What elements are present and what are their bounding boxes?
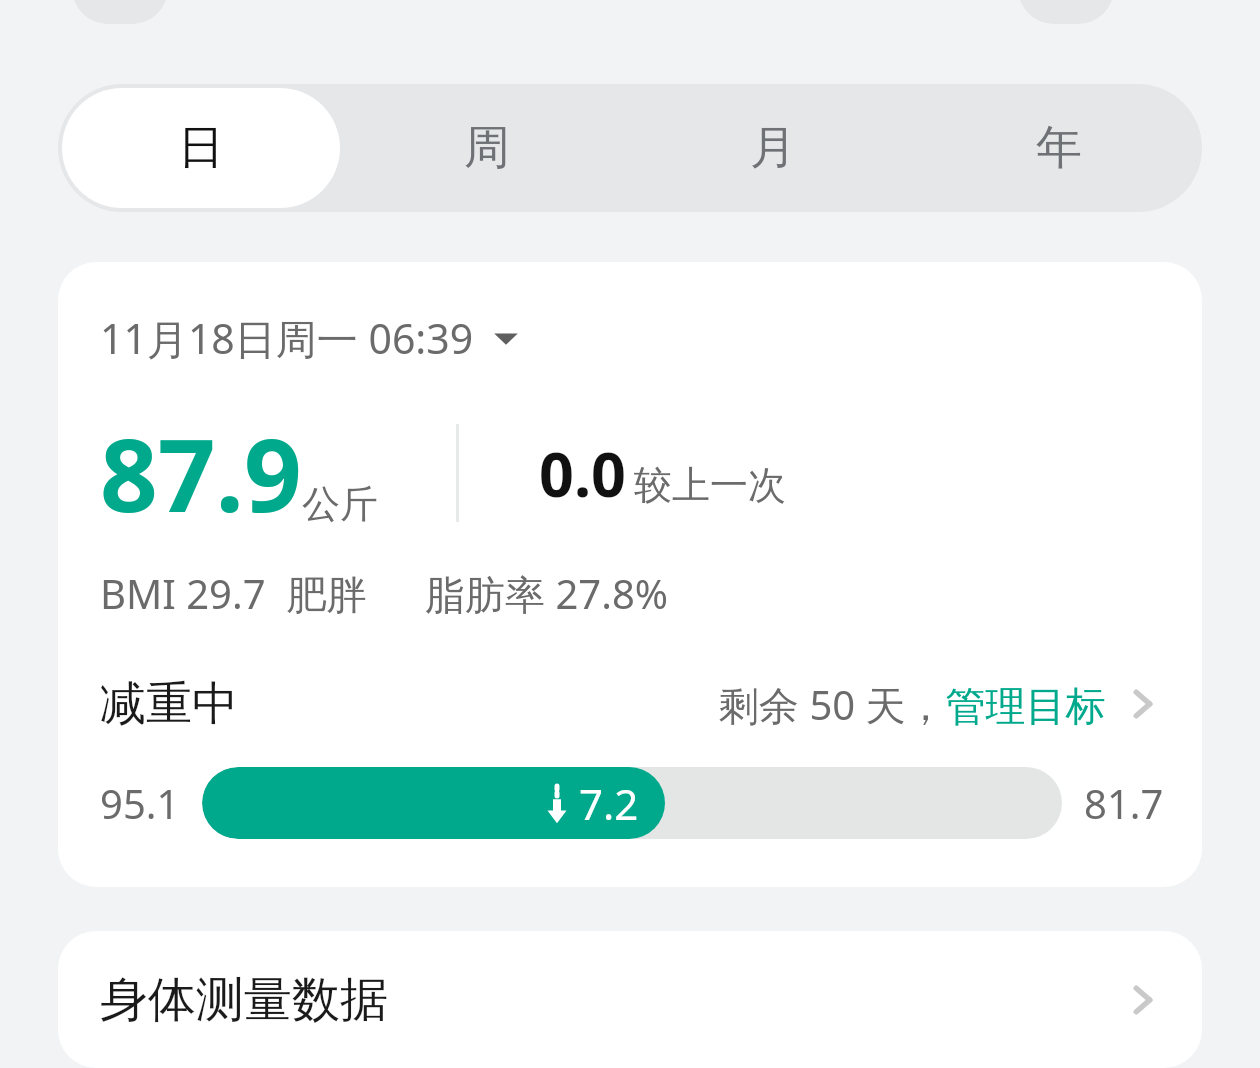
staticText: 0.0	[539, 432, 626, 515]
button[interactable]: 减重中	[58, 675, 1202, 733]
staticText: 周	[464, 119, 510, 177]
button[interactable]: 月	[634, 88, 912, 208]
staticText: 脂肪率 27.8%	[425, 566, 668, 621]
staticText: 身体测量数据	[100, 970, 388, 1030]
staticText: 减重中	[100, 675, 238, 733]
staticText: 95.1	[100, 776, 180, 830]
button[interactable]: 11月18日周一 06:39	[100, 310, 520, 366]
staticText: 7.2	[579, 775, 639, 832]
staticText: BMI 29.7 肥胖	[100, 566, 367, 621]
staticText: 月	[750, 119, 796, 177]
other: 管理目标	[1122, 683, 1164, 725]
staticText: 87.9	[100, 404, 302, 542]
staticText: 较上一次	[634, 461, 786, 509]
staticText: 81.7	[1084, 776, 1164, 830]
staticText: 11月18日周一 06:39	[100, 310, 474, 366]
staticText: 剩余 50 天，管理目标	[719, 677, 1106, 732]
button[interactable]: 年	[920, 88, 1198, 208]
staticText: 公斤	[302, 480, 378, 528]
button[interactable]: 周	[348, 88, 626, 208]
staticText: 日	[178, 119, 224, 177]
button[interactable]: 日	[62, 88, 340, 208]
button[interactable]: 身体测量数据	[58, 931, 1202, 1068]
staticText: 年	[1036, 119, 1082, 177]
